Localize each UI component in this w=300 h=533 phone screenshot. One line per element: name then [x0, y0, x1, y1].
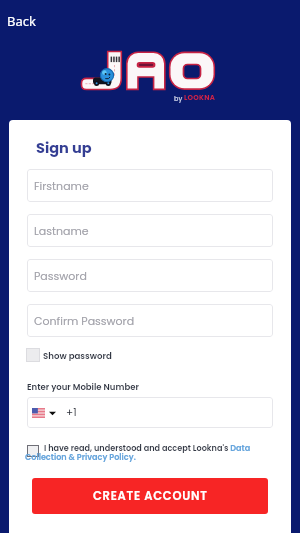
staticText: +1: [66, 405, 77, 420]
staticText: CREATE ACCOUNT: [93, 488, 208, 504]
staticText: I have read, understood and accept Lookn…: [44, 442, 251, 453]
button[interactable]: Confirm Password: [27, 304, 273, 337]
staticText: Back: [7, 12, 36, 30]
button[interactable]: Lastname: [27, 214, 273, 247]
staticText: Password: [34, 268, 87, 283]
staticText: Confirm Password: [34, 313, 135, 328]
staticText: Collection & Privacy Policy.: [25, 451, 136, 462]
staticText: Firstname: [34, 178, 89, 193]
button[interactable]: I have read, understood and accept Lookn…: [25, 442, 287, 465]
staticText: by: [174, 94, 184, 103]
button[interactable]: Password: [27, 259, 273, 292]
button[interactable]: Select country code: [27, 397, 273, 428]
button[interactable]: Back: [7, 12, 36, 30]
button[interactable]: Firstname: [27, 169, 273, 202]
staticText: LOOKNA: [184, 93, 216, 103]
staticText: Show password: [43, 350, 112, 362]
staticText: Lastname: [34, 223, 89, 238]
button[interactable]: Show password: [26, 348, 112, 362]
staticText: Enter your Mobile Number: [27, 381, 139, 393]
staticText: Sign up: [36, 138, 92, 158]
button[interactable]: CREATE ACCOUNT: [32, 478, 268, 514]
